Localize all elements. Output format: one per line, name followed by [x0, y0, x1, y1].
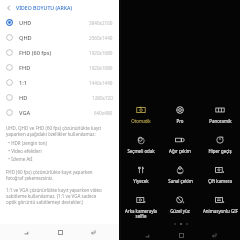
button[interactable]: Home [53, 225, 67, 239]
button[interactable]: HD [0, 90, 119, 105]
button[interactable]: Pro [160, 101, 200, 131]
other: Back [3, 2, 14, 13]
button[interactable]: Animasyonlu GIF [200, 191, 240, 223]
staticText: Animasyonlu GIF [203, 208, 238, 214]
staticText: 2560x1440 [89, 35, 113, 41]
staticText: FHD (60 fps) çözünürlükte kayıt yaparken [6, 169, 93, 175]
button[interactable]: Arka kamerayla selfie [121, 191, 160, 223]
staticText: 640x480 [94, 110, 113, 116]
staticText: • İzleme Atİ [6, 156, 33, 162]
staticText: 1440x1440 [89, 80, 113, 86]
staticText: 3840x2160 [89, 20, 113, 26]
staticText: Güzel yüz [170, 208, 190, 214]
button[interactable]: Yiyecek [121, 161, 160, 191]
button[interactable]: Otomatik [121, 101, 160, 131]
staticText: • HDR (zengin ton) [6, 140, 47, 146]
staticText: 1280x720 [92, 95, 113, 101]
staticText: Sanal çekim [168, 178, 193, 184]
staticText: 1920x1080 [89, 65, 113, 71]
button[interactable]: Recents [19, 225, 33, 239]
staticText: • Video efektleri [6, 148, 42, 154]
button[interactable]: 1:1 [0, 75, 119, 90]
staticText: VİDEO BOYUTU (ARKA) [16, 4, 73, 11]
staticText: QHD [19, 34, 32, 42]
staticText: Pro [176, 118, 184, 124]
staticText: UHD, QHD ve FHD (60 fps) çözünürlükte ka… [6, 125, 102, 131]
button[interactable]: VGA [0, 105, 119, 120]
button[interactable]: Back [86, 225, 100, 239]
staticText: HD [19, 94, 28, 102]
staticText: VGA [19, 109, 31, 117]
button[interactable]: Hiper geçiş [200, 131, 240, 161]
button[interactable]: QHD [0, 30, 119, 45]
staticText: Çift kamera [208, 178, 232, 184]
button[interactable]: Back [207, 231, 221, 240]
staticText: yaparken aşağıdaki özellikler kullanılam… [6, 131, 96, 137]
staticText: optik görüntü sabitlemeyi destekler.) [6, 199, 83, 205]
button[interactable]: UHD [0, 15, 119, 30]
staticText: Ağır çekim [169, 148, 191, 154]
staticText: sabitleme kullanılamaz. (1:1 ve VGA sade… [6, 193, 97, 199]
staticText: Arka kamerayla selfie [125, 208, 157, 219]
staticText: Panoramik [209, 118, 232, 124]
button[interactable]: FHD [0, 60, 119, 75]
staticText: 1920x1080 [89, 50, 113, 56]
staticText: 1:1 ve VGA çözünürlükte kayıt yaparken v… [6, 187, 102, 193]
staticText: UHD [19, 19, 32, 27]
button[interactable]: Seçmeli odak [121, 131, 160, 161]
staticText: fotoğraf çekemezsiniz. [6, 175, 54, 181]
button[interactable]: Çift kamera [200, 161, 240, 191]
staticText: Otomatik [131, 118, 151, 124]
staticText: 1:1 [19, 79, 27, 87]
staticText: Hiper geçiş [208, 148, 232, 154]
button[interactable]: Recents [140, 231, 154, 240]
button[interactable]: Back [0, 0, 119, 15]
staticText: Seçmeli odak [127, 148, 155, 154]
staticText: FHD (60 fps) [19, 49, 52, 57]
staticText: FHD [19, 64, 31, 72]
staticText: Yiyecek [133, 178, 149, 184]
button[interactable]: Home [174, 231, 188, 240]
button[interactable]: Sanal çekim [160, 161, 200, 191]
button[interactable]: Ağır çekim [160, 131, 200, 161]
button[interactable]: FHD (60 fps) [0, 45, 119, 60]
button[interactable]: Güzel yüz [160, 191, 200, 223]
button[interactable]: Panoramik [200, 101, 240, 131]
